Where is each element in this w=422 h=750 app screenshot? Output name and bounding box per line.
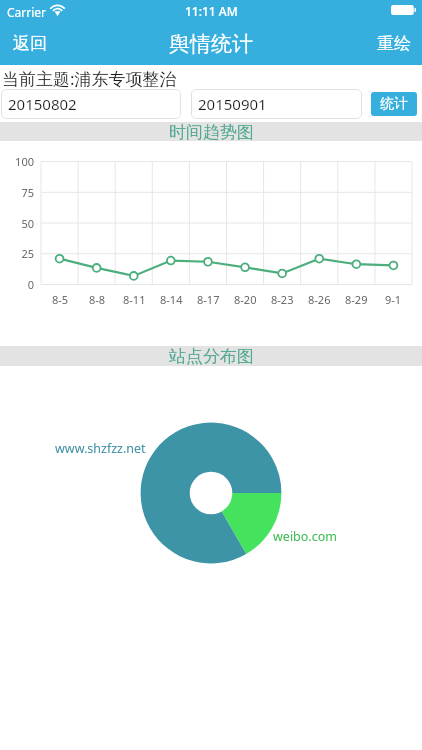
staticText: Carrier bbox=[7, 4, 47, 20]
staticText: 20150802 bbox=[8, 94, 77, 114]
staticText: 0 bbox=[27, 277, 34, 292]
staticText: 9-1 bbox=[385, 292, 402, 307]
staticText: 8-20 bbox=[234, 292, 257, 307]
staticText: 统计 bbox=[380, 95, 408, 113]
staticText: 重绘 bbox=[377, 33, 411, 54]
staticText: 8-11 bbox=[123, 292, 146, 307]
staticText: 站点分布图 bbox=[169, 346, 254, 366]
staticText: 8-26 bbox=[308, 292, 331, 307]
staticText: weibo.com bbox=[273, 528, 337, 545]
staticText: 50 bbox=[21, 216, 34, 231]
staticText: 8-23 bbox=[271, 292, 294, 307]
staticText: 时间趋势图 bbox=[169, 122, 254, 141]
staticText: 当前主题:浦东专项整治 bbox=[2, 67, 177, 90]
staticText: 25 bbox=[21, 246, 34, 261]
button[interactable]: 重绘 bbox=[363, 24, 422, 63]
staticText: 舆情统计 bbox=[169, 31, 253, 57]
staticText: 8-17 bbox=[197, 292, 220, 307]
button[interactable]: 统计 bbox=[371, 92, 417, 116]
staticText: 11:11 AM bbox=[185, 3, 238, 19]
staticText: 8-8 bbox=[89, 292, 106, 307]
staticText: 返回 bbox=[13, 33, 47, 54]
staticText: 20150901 bbox=[198, 94, 267, 114]
button[interactable]: 返回 bbox=[0, 24, 61, 63]
button[interactable]: 20150802 bbox=[1, 89, 181, 119]
staticText: 100 bbox=[15, 154, 34, 169]
staticText: www.shzfzz.net bbox=[55, 440, 146, 457]
button[interactable]: 20150901 bbox=[191, 89, 362, 119]
staticText: 75 bbox=[21, 185, 34, 200]
staticText: 8-29 bbox=[345, 292, 368, 307]
staticText: 8-5 bbox=[52, 292, 69, 307]
staticText: 8-14 bbox=[160, 292, 183, 307]
